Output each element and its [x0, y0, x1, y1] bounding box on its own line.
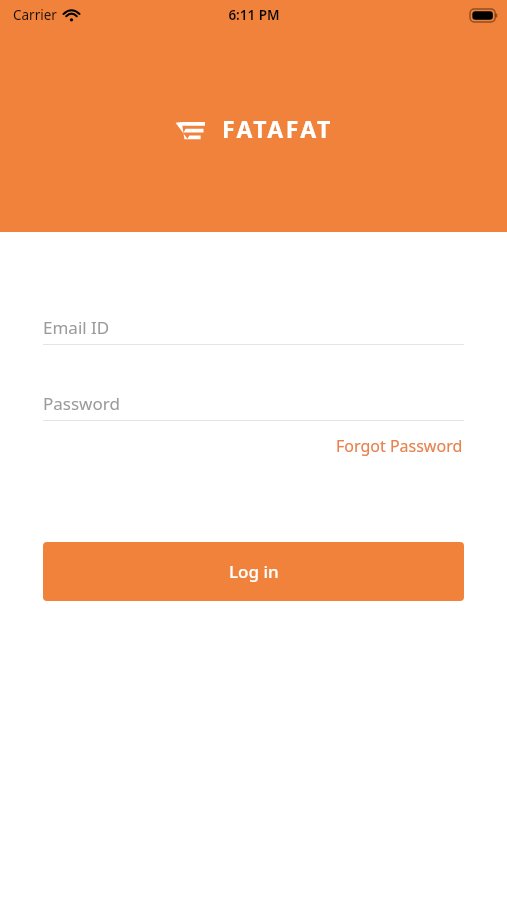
button[interactable]: Forgot Password — [335, 432, 464, 460]
button[interactable]: Password — [43, 386, 464, 420]
staticText: Forgot Password — [336, 435, 463, 457]
other: Fatafat logo — [175, 117, 205, 140]
staticText: Email ID — [43, 316, 110, 339]
staticText: Password — [43, 392, 120, 415]
staticText: Log in — [229, 560, 279, 583]
button[interactable]: Log in — [43, 542, 464, 601]
staticText: FATAFAT — [222, 113, 333, 144]
staticText: Carrier — [13, 6, 57, 24]
staticText: 6:11 PM — [228, 6, 280, 24]
button[interactable]: Email ID — [43, 310, 464, 344]
